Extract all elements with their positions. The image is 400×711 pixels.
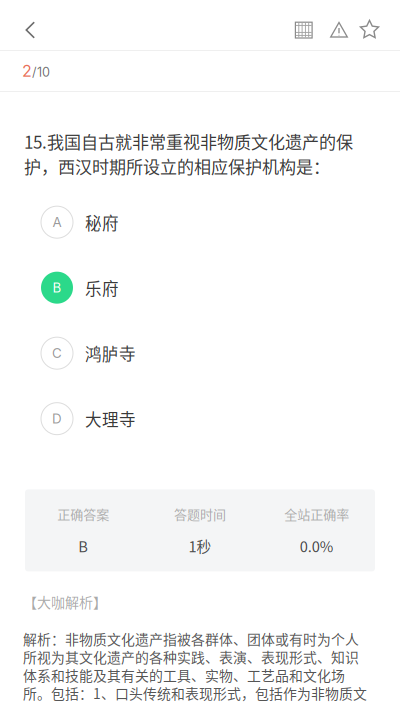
staticText: 乐府 <box>85 276 119 300</box>
staticText: 0.0% <box>300 535 334 556</box>
staticText: 秘府 <box>85 210 119 234</box>
staticText: 正确答案 <box>57 504 109 523</box>
staticText: 2 <box>22 61 32 81</box>
staticText: 1秒 <box>188 535 211 556</box>
staticText: B <box>78 535 88 556</box>
button[interactable]: C <box>0 320 400 386</box>
staticText: 大理寺 <box>85 407 136 431</box>
staticText: A <box>52 214 61 230</box>
staticText: 鸿胪寺 <box>85 341 136 365</box>
button[interactable]: D <box>0 386 400 451</box>
staticText: 解析：非物质文化遗产指被各群体、团体或有时为个人所视为其文化遗产的各种实践、表演… <box>23 629 367 703</box>
button[interactable]: A <box>0 189 400 255</box>
button[interactable]: Card mode <box>294 0 323 50</box>
staticText: B <box>52 280 61 296</box>
button[interactable]: Back <box>0 0 52 50</box>
button[interactable]: Favorite <box>355 0 385 50</box>
staticText: /10 <box>32 64 50 80</box>
staticText: 全站正确率 <box>284 504 349 523</box>
staticText: 【大咖解析】 <box>23 591 107 612</box>
button[interactable]: B <box>0 255 400 320</box>
staticText: 答题时间 <box>174 504 226 523</box>
staticText: C <box>52 345 62 361</box>
button[interactable]: Report question <box>323 0 355 50</box>
staticText: D <box>52 411 62 427</box>
staticText: 15.我国自古就非常重视非物质文化遗产的保护，西汉时期所设立的相应保护机构是： <box>24 129 353 178</box>
